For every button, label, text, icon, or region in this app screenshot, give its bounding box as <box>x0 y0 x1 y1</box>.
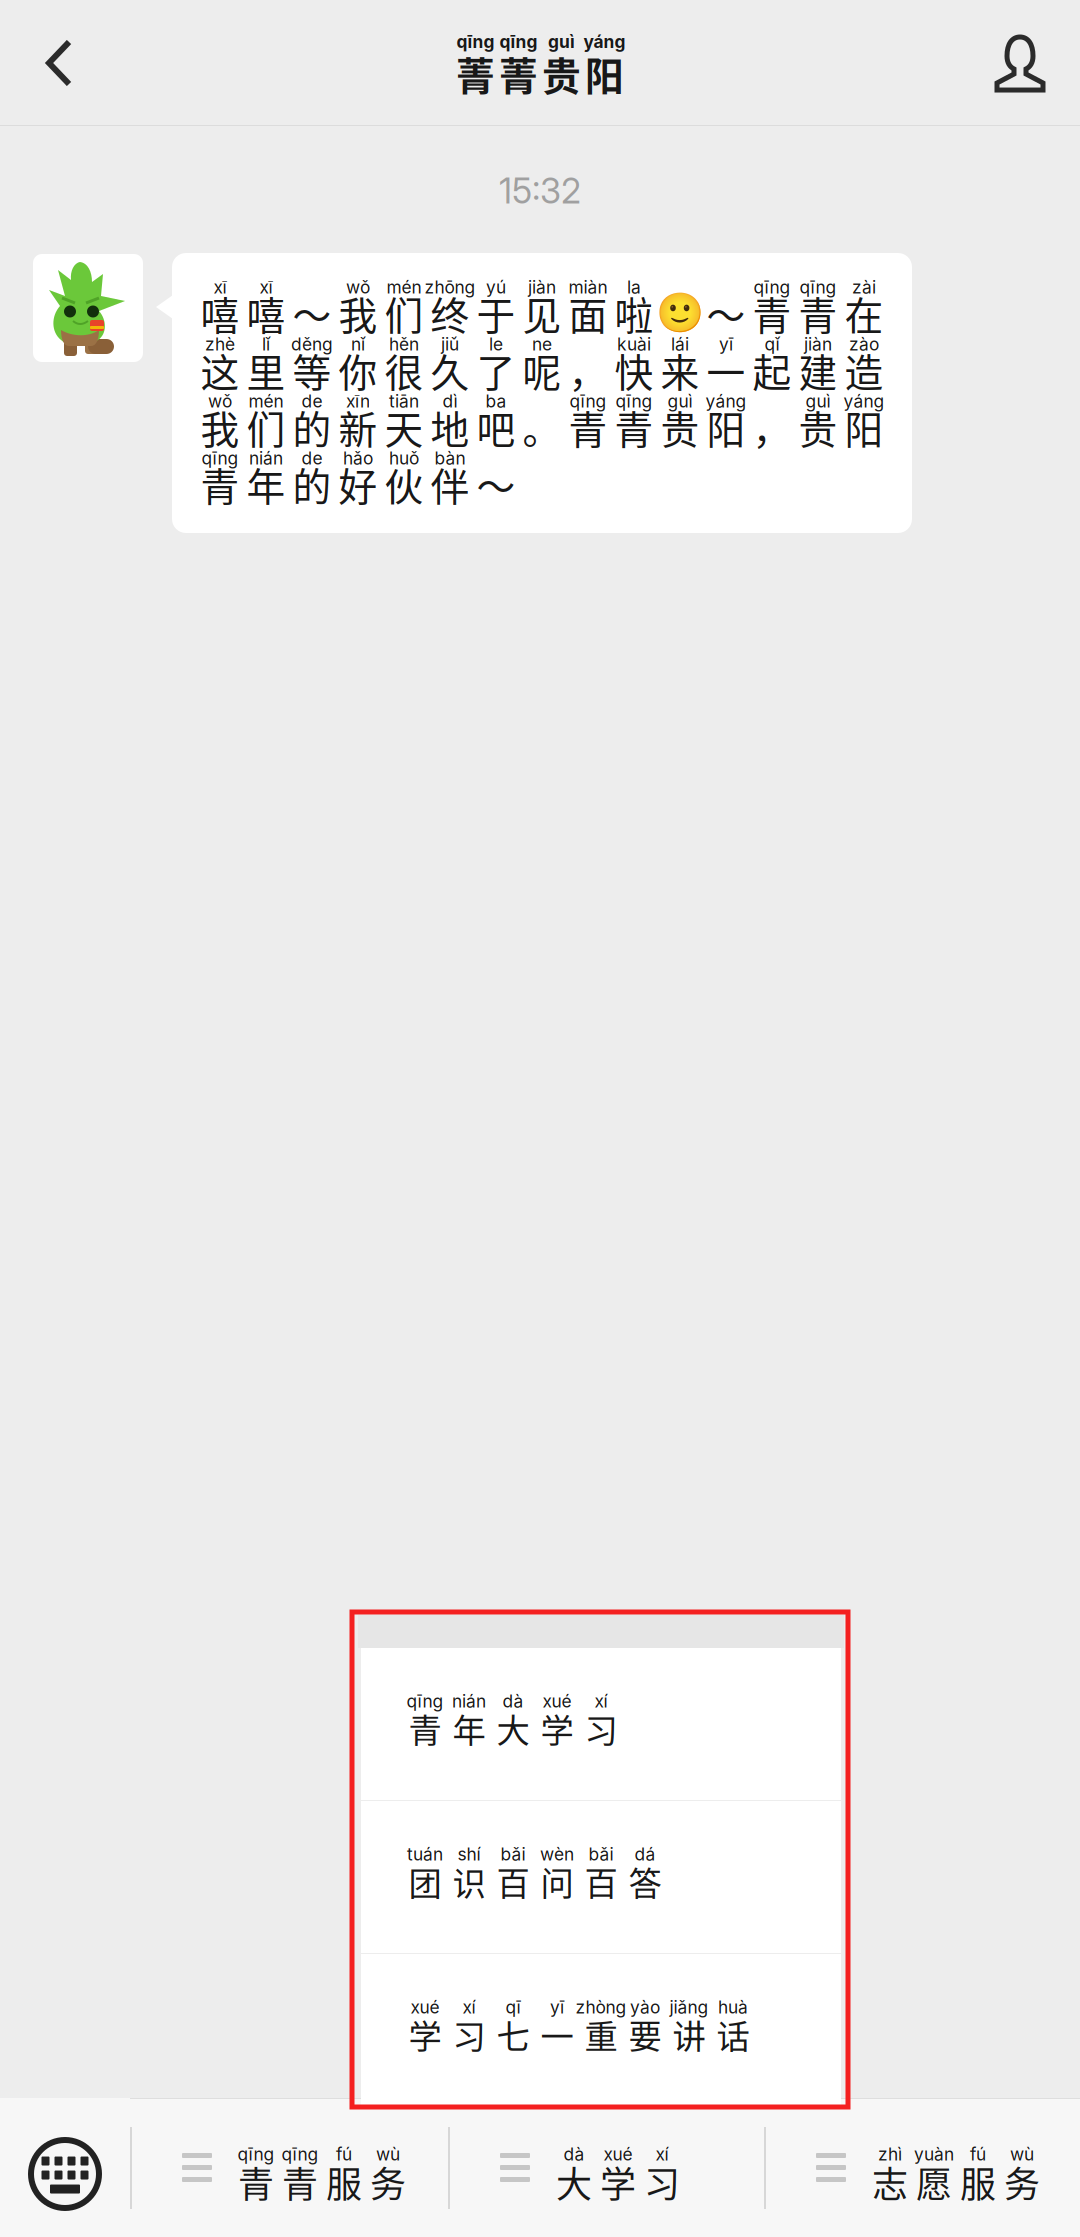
staticText: 于 <box>476 285 515 341</box>
staticText: 学 <box>408 2010 441 2058</box>
staticText: 菁 <box>499 46 538 102</box>
staticText: guì <box>667 391 692 412</box>
staticText: 重 <box>584 2010 617 2058</box>
staticText: qīng <box>569 391 606 412</box>
staticText: 贵 <box>542 46 581 102</box>
button[interactable]: zhì <box>764 2098 1080 2237</box>
staticText: 造 <box>844 342 883 398</box>
staticText: guì <box>548 31 575 52</box>
staticText: mén <box>248 391 283 412</box>
staticText: 习 <box>584 1704 617 1752</box>
staticText: 愿 <box>916 2156 952 2208</box>
staticText: ， <box>752 399 791 455</box>
staticText: 面 <box>568 285 607 341</box>
staticText: 问 <box>540 1857 573 1905</box>
staticText: 快 <box>614 342 653 398</box>
staticText: 我 <box>338 285 377 341</box>
staticText: ba <box>485 391 506 412</box>
staticText: 一 <box>706 342 745 398</box>
staticText: dà <box>502 1691 523 1712</box>
staticText: 很 <box>384 342 423 398</box>
staticText: 要 <box>628 2010 661 2058</box>
staticText: 团 <box>408 1857 441 1905</box>
staticText: yī <box>550 1997 564 2018</box>
staticText: zhōng <box>424 277 475 298</box>
staticText: 志 <box>872 2156 908 2208</box>
button[interactable]: xué <box>361 1954 841 2106</box>
staticText: yú <box>486 277 506 298</box>
staticText: zhòng <box>575 1997 626 2018</box>
staticText: 建 <box>798 342 837 398</box>
staticText: kuài <box>617 334 651 355</box>
button[interactable]: Keyboard <box>0 2098 130 2237</box>
staticText: jiàn <box>804 334 832 355</box>
staticText: zài <box>852 277 876 298</box>
staticText: 在 <box>844 285 883 341</box>
staticText: qīng <box>237 2144 274 2165</box>
staticText: tiān <box>389 391 419 412</box>
button[interactable]: qīng <box>361 1648 841 1800</box>
staticText: 务 <box>1004 2156 1040 2208</box>
staticText: 我 <box>200 399 239 455</box>
staticText: yuàn <box>914 2144 954 2165</box>
staticText: 起 <box>752 342 791 398</box>
staticText: xué <box>410 1997 439 2018</box>
staticText: qī <box>505 1997 520 2018</box>
staticText: 答 <box>628 1857 661 1905</box>
staticText: guì <box>805 391 830 412</box>
staticText: 青 <box>200 456 239 512</box>
staticText: 好 <box>338 456 377 512</box>
button[interactable]: dà <box>448 2098 764 2237</box>
staticText: 嘻 <box>246 285 285 341</box>
staticText: ～ <box>706 285 745 341</box>
staticText: tuán <box>407 1844 443 1865</box>
staticText: qǐ <box>764 334 779 355</box>
staticText: wèn <box>540 1844 574 1865</box>
staticText: 讲 <box>672 2010 705 2058</box>
staticText: 学 <box>600 2156 636 2208</box>
staticText: miàn <box>568 277 607 298</box>
staticText: 百 <box>584 1857 617 1905</box>
staticText: qīng <box>799 277 836 298</box>
staticText: xī <box>213 277 226 298</box>
staticText: le <box>489 334 503 355</box>
staticText: 青 <box>408 1704 441 1752</box>
staticText: xīn <box>346 391 370 412</box>
staticText: 青 <box>568 399 607 455</box>
staticText: shí <box>457 1844 480 1865</box>
button[interactable]: tuán <box>361 1801 841 1953</box>
staticText: lái <box>671 334 689 355</box>
staticText: 久 <box>430 342 469 398</box>
staticText: 话 <box>716 2010 749 2058</box>
staticText: děng <box>291 334 333 355</box>
staticText: nǐ <box>351 334 365 355</box>
staticText: 贵 <box>798 399 837 455</box>
staticText: xí <box>655 2144 668 2165</box>
staticText: de <box>301 391 322 412</box>
staticText: 青 <box>752 285 791 341</box>
staticText: 务 <box>370 2156 406 2208</box>
staticText: de <box>301 448 322 469</box>
staticText: 的 <box>292 399 331 455</box>
button[interactable]: Back <box>0 0 120 126</box>
staticText: 终 <box>430 285 469 341</box>
staticText: wǒ <box>208 391 232 412</box>
staticText: hěn <box>389 334 419 355</box>
staticText: 嘻 <box>200 285 239 341</box>
staticText: fú <box>336 2144 352 2165</box>
staticText: wǒ <box>346 277 370 298</box>
staticText: huǒ <box>389 448 419 469</box>
staticText: lǐ <box>262 334 270 355</box>
staticText: qīng <box>281 2144 318 2165</box>
staticText: qīng <box>615 391 652 412</box>
button[interactable]: Contact <box>960 0 1080 126</box>
staticText: yáng <box>583 31 625 52</box>
staticText: yào <box>630 1997 660 2018</box>
staticText: 呢 <box>522 342 561 398</box>
staticText: 们 <box>384 285 423 341</box>
staticText: ， <box>568 342 607 398</box>
staticText: yī <box>719 334 733 355</box>
button[interactable]: qīng <box>130 2098 448 2237</box>
staticText: zhè <box>205 334 235 355</box>
staticText: 吧 <box>476 399 515 455</box>
